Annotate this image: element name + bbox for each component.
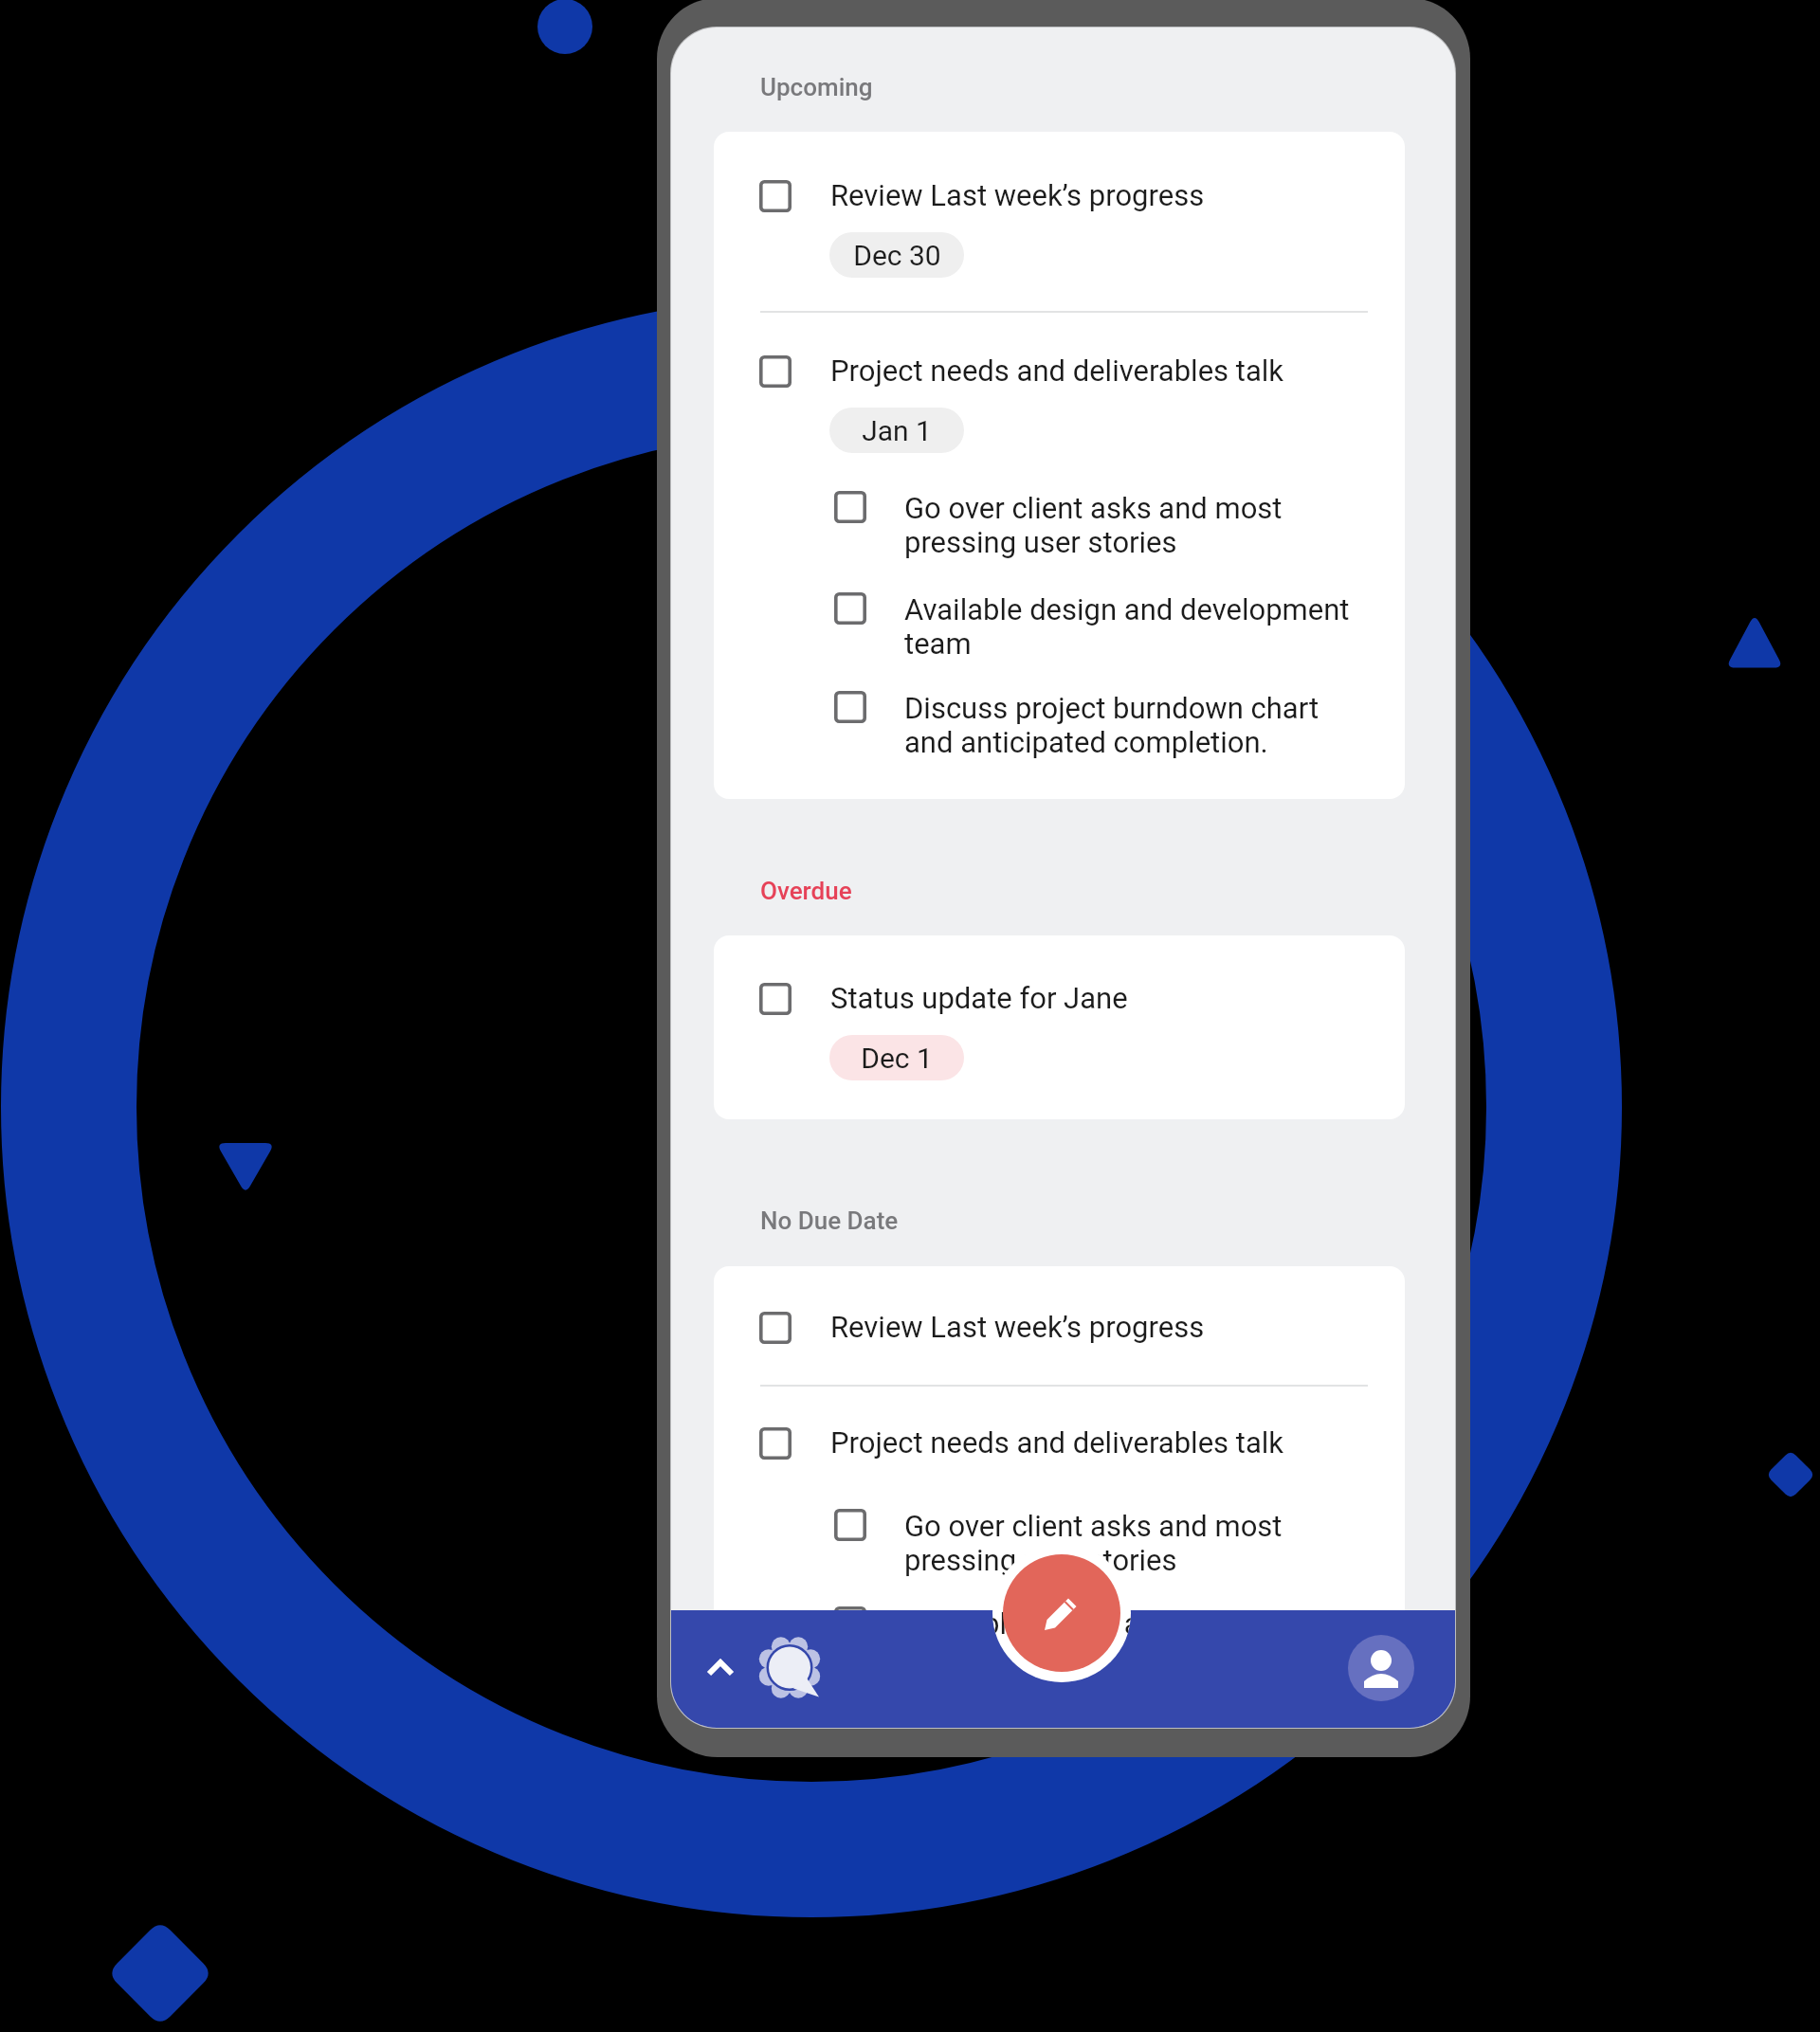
button[interactable]: [714, 480, 1405, 571]
staticText: Project needs and deliverables talk: [830, 354, 1284, 388]
button[interactable]: Dec 1: [829, 1035, 964, 1080]
button[interactable]: [714, 1298, 1405, 1357]
staticText: Available design and development team: [904, 1606, 1359, 1675]
button[interactable]: [714, 1595, 1405, 1686]
button[interactable]: Expand: [681, 1629, 760, 1709]
staticText: Review Last week’s progress: [830, 1310, 1205, 1344]
button[interactable]: Create task: [1003, 1554, 1120, 1672]
staticText: Project needs and deliverables talk: [830, 1425, 1284, 1460]
button[interactable]: Jan 1: [829, 408, 964, 453]
button[interactable]: Account: [1332, 1619, 1430, 1717]
button[interactable]: [714, 1595, 1405, 1686]
button[interactable]: [714, 342, 1405, 401]
button[interactable]: [714, 1414, 1405, 1473]
staticText: Review Last week’s progress: [830, 178, 1205, 212]
button[interactable]: [714, 970, 1405, 1028]
button[interactable]: [714, 1497, 1405, 1588]
staticText: Available design and development team: [904, 1606, 1359, 1675]
staticText: Go over client asks and most pressing us…: [904, 491, 1359, 559]
staticText: Discuss project burndown chart and antic…: [904, 691, 1359, 759]
staticText: No Due Date: [760, 1206, 899, 1235]
button[interactable]: Assistant: [752, 1631, 828, 1707]
staticText: Overdue: [760, 877, 852, 905]
button[interactable]: Dec 30: [829, 232, 964, 278]
button[interactable]: [714, 680, 1405, 771]
button[interactable]: [714, 581, 1405, 672]
button[interactable]: [714, 167, 1405, 226]
staticText: Dec 1: [861, 1042, 933, 1075]
staticText: Upcoming: [760, 73, 873, 101]
staticText: Go over client asks and most pressing us…: [904, 1509, 1359, 1577]
staticText: Dec 30: [853, 239, 941, 272]
staticText: Available design and development team: [904, 592, 1359, 661]
staticText: Status update for Jane: [830, 981, 1128, 1015]
staticText: Jan 1: [862, 414, 932, 447]
